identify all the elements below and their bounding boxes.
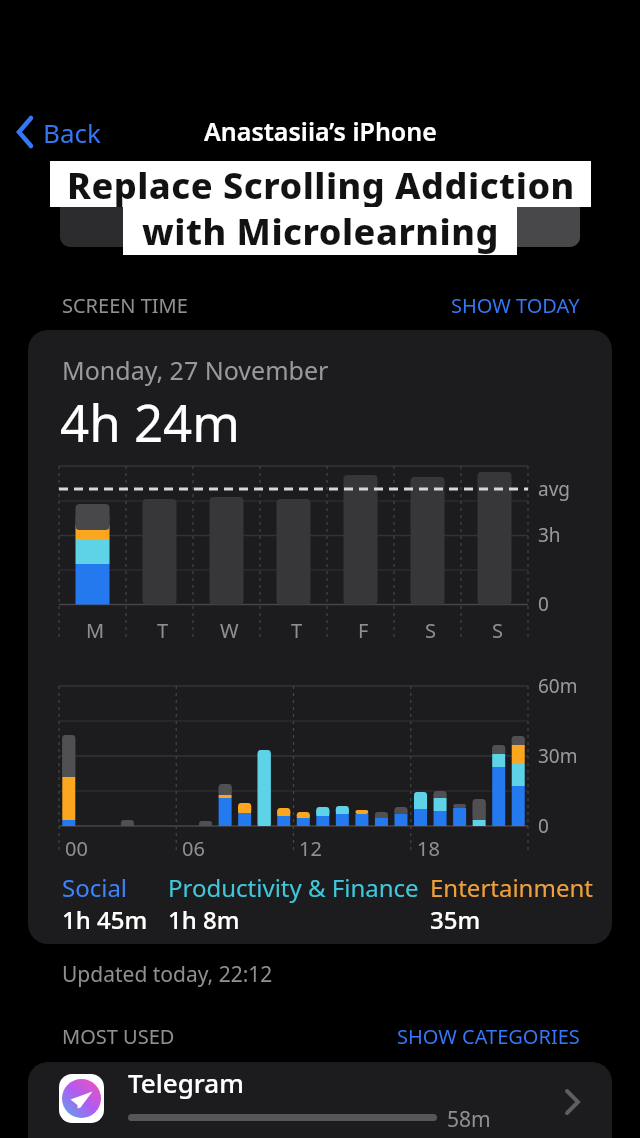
staticText: Entertainment bbox=[430, 871, 593, 904]
staticText: 30m bbox=[538, 743, 578, 769]
staticText: avg bbox=[538, 476, 570, 502]
staticText: F bbox=[358, 617, 369, 644]
staticText: with Microlearning bbox=[142, 207, 499, 255]
staticText: Back bbox=[43, 115, 101, 150]
staticText: 06 bbox=[182, 835, 205, 862]
button[interactable]: SHOW CATEGORIES bbox=[397, 1023, 580, 1050]
staticText: 1h 8m bbox=[168, 903, 240, 936]
staticText: MOST USED bbox=[62, 1023, 175, 1050]
staticText: W bbox=[220, 617, 239, 644]
staticText: T bbox=[157, 617, 169, 644]
button[interactable]: SHOW TODAY bbox=[451, 292, 580, 319]
button[interactable] bbox=[28, 1062, 612, 1138]
staticText: S bbox=[425, 617, 436, 644]
staticText: SCREEN TIME bbox=[62, 292, 188, 319]
staticText: Productivity & Finance bbox=[168, 871, 419, 904]
staticText: Telegram bbox=[128, 1065, 244, 1100]
button[interactable]: Back bbox=[13, 114, 101, 150]
staticText: 4h 24m bbox=[60, 387, 240, 456]
staticText: 00 bbox=[65, 835, 88, 862]
staticText: T bbox=[291, 617, 303, 644]
staticText: Social bbox=[62, 871, 128, 904]
staticText: 58m bbox=[447, 1105, 491, 1134]
staticText: 12 bbox=[299, 835, 322, 862]
staticText: 1h 45m bbox=[62, 903, 148, 936]
staticText: 0 bbox=[538, 591, 549, 617]
staticText: 0 bbox=[538, 813, 549, 839]
staticText: Monday, 27 November bbox=[62, 353, 329, 387]
staticText: M bbox=[86, 617, 105, 644]
staticText: S bbox=[492, 617, 503, 644]
staticText: 18 bbox=[417, 835, 440, 862]
staticText: Anastasiia’s iPhone bbox=[204, 114, 437, 148]
staticText: Updated today, 22:12 bbox=[62, 960, 273, 989]
staticText: 3h bbox=[538, 522, 561, 548]
staticText: 60m bbox=[538, 673, 578, 699]
staticText: 35m bbox=[430, 903, 481, 936]
staticText: Replace Scrolling Addiction bbox=[67, 161, 575, 207]
